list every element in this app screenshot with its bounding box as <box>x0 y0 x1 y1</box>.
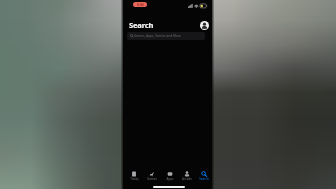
button[interactable]: Account <box>200 21 209 30</box>
button[interactable]: Games <box>143 170 161 181</box>
staticText: Games, Apps, Stories and More <box>134 34 181 38</box>
staticText: Today <box>130 177 139 181</box>
staticText: 0:04 <box>137 2 144 7</box>
staticText: Search <box>199 177 209 181</box>
button[interactable]: Search <box>195 170 212 181</box>
button[interactable]: Games, Apps, Stories and More <box>127 32 205 40</box>
staticText: Arcade <box>182 177 192 181</box>
button[interactable]: Apps <box>161 170 178 181</box>
button[interactable]: Today <box>125 170 143 181</box>
staticText: Games <box>147 177 157 181</box>
staticText: Search <box>129 20 154 30</box>
staticText: Apps <box>166 177 174 181</box>
button[interactable]: Arcade <box>178 170 195 181</box>
